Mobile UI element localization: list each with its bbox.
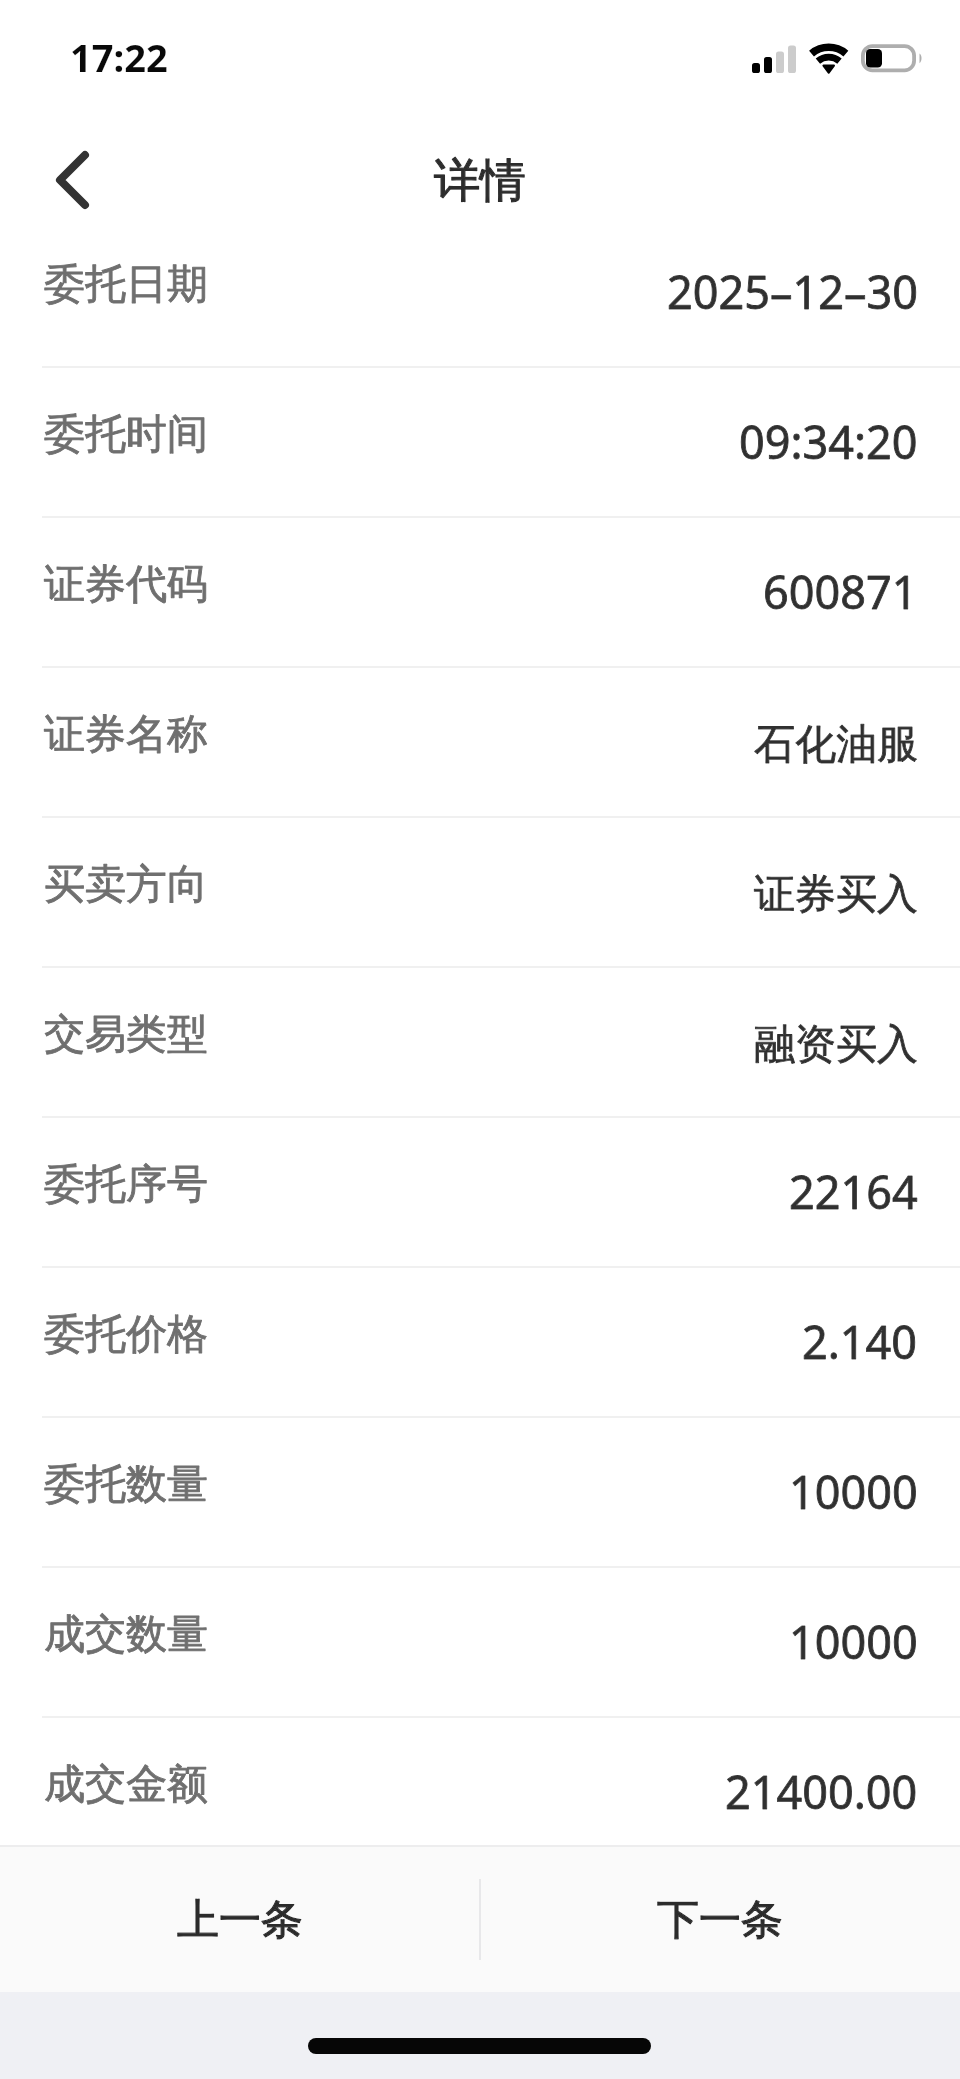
staticText: 10000 [789,1461,918,1522]
staticText: 委托价格 [44,1309,208,1361]
staticText: 成交金额 [44,1759,208,1811]
staticText: 22164 [789,1161,918,1222]
button[interactable]: 委托数量 [0,1418,960,1568]
button[interactable]: 委托价格 [0,1268,960,1418]
staticText: 交易类型 [44,1009,208,1061]
staticText: 600871 [763,561,918,622]
button[interactable]: 成交数量 [0,1568,960,1718]
staticText: 委托数量 [44,1459,208,1511]
button[interactable]: 上一条 [0,1847,480,1992]
staticText: 21400.00 [725,1761,918,1822]
staticText: 委托序号 [44,1159,208,1211]
button[interactable]: 委托时间 [0,368,960,518]
staticText: 石化油服 [754,719,918,771]
button[interactable]: 下一条 [480,1847,960,1992]
staticText: 买卖方向 [44,859,208,911]
staticText: 2.140 [802,1311,918,1372]
staticText: 上一条 [177,1894,303,1947]
button[interactable]: 委托序号 [0,1118,960,1268]
staticText: 09:34:20 [739,411,918,472]
staticText: 证券名称 [44,709,208,761]
staticText: 600871 [763,561,918,622]
staticText: 成交数量 [44,1609,208,1661]
staticText: 详情 [434,152,526,210]
staticText: 委托序号 [44,1159,208,1211]
staticText: 委托数量 [44,1459,208,1511]
button[interactable]: 交易类型 [0,968,960,1118]
staticText: 融资买入 [754,1019,918,1071]
staticText: 17:22 [70,31,168,83]
staticText: 委托日期 [44,259,208,311]
staticText: 证券买入 [754,869,918,921]
staticText: 石化油服 [754,719,918,771]
staticText: 10000 [789,1461,918,1522]
staticText: 证券代码 [44,559,208,611]
staticText: 证券名称 [44,709,208,761]
staticText: 下一条 [657,1894,783,1947]
staticText: 证券代码 [44,559,208,611]
staticText: 2025–12–30 [667,261,918,322]
staticText: 证券买入 [754,869,918,921]
staticText: 详情 [434,152,526,210]
staticText: 10000 [789,1611,918,1672]
button[interactable]: 买卖方向 [0,818,960,968]
button[interactable]: 证券名称 [0,668,960,818]
staticText: 22164 [789,1161,918,1222]
staticText: 委托时间 [44,409,208,461]
staticText: 下一条 [657,1894,783,1947]
staticText: 21400.00 [725,1761,918,1822]
staticText: 09:34:20 [739,411,918,472]
button[interactable]: 成交金额 [0,1718,960,1845]
staticText: 2.140 [802,1311,918,1372]
staticText: 交易类型 [44,1009,208,1061]
staticText: 买卖方向 [44,859,208,911]
button[interactable]: Back [24,132,120,228]
staticText: 委托日期 [44,259,208,311]
button[interactable]: 证券代码 [0,518,960,668]
staticText: 融资买入 [754,1019,918,1071]
staticText: 委托时间 [44,409,208,461]
staticText: 成交金额 [44,1759,208,1811]
staticText: 10000 [789,1611,918,1672]
button[interactable]: 委托日期 [0,218,960,368]
staticText: 2025–12–30 [667,261,918,322]
staticText: 成交数量 [44,1609,208,1661]
staticText: 委托价格 [44,1309,208,1361]
staticText: 上一条 [177,1894,303,1947]
